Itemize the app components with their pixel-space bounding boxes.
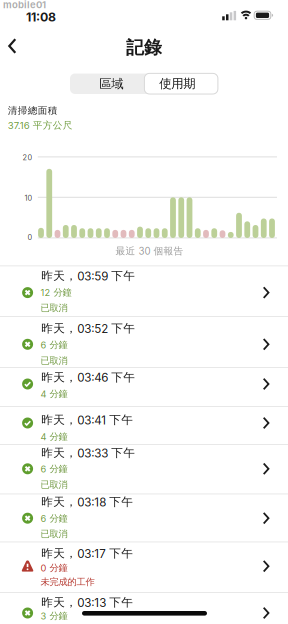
staticText: 12 分鐘 [40,286,71,298]
button[interactable]: 昨天，03:18 下午 [0,493,288,541]
staticText: 昨天，03:13 下午 [41,595,133,610]
staticText: 已取消 [40,302,67,314]
staticText: 已取消 [40,355,67,366]
button[interactable]: 昨天，03:17 下午 [0,541,288,592]
staticText: 昨天，03:59 下午 [41,269,135,283]
staticText: 區域 [99,76,123,91]
staticText: 3 分鐘 [40,610,67,622]
staticText: 0 [27,233,32,242]
staticText: 已取消 [40,528,67,540]
staticText: 4 分鐘 [40,431,67,442]
button[interactable]: 昨天，03:33 下午 [0,444,288,493]
staticText: 10 [24,194,32,203]
staticText: 昨天，03:52 下午 [41,321,135,336]
button[interactable]: 區域 [70,73,144,94]
staticText: 6 分鐘 [40,512,67,524]
button[interactable]: Back [0,26,29,66]
staticText: 清掃總面積 [8,105,58,117]
button[interactable]: 昨天，03:59 下午 [0,265,288,316]
staticText: 37.16 平方公尺 [8,119,73,131]
staticText: 使用期 [159,76,195,91]
staticText: 已取消 [40,479,67,490]
button[interactable]: 昨天，03:46 下午 [0,367,288,406]
staticText: 昨天，03:17 下午 [41,546,133,561]
staticText: 11:08 [26,10,56,24]
button[interactable]: 使用期 [144,73,218,94]
staticText: 昨天，03:46 下午 [41,370,135,385]
staticText: 昨天，03:41 下午 [41,413,133,427]
staticText: 記錄 [126,36,162,59]
button[interactable]: 昨天，03:52 下午 [0,316,288,367]
staticText: 昨天，03:18 下午 [41,495,133,509]
staticText: 最近 30 個報告 [115,245,183,257]
button[interactable]: 昨天，03:13 下午 [0,592,288,624]
staticText: 6 分鐘 [40,463,67,475]
staticText: 4 分鐘 [40,388,67,400]
staticText: 6 分鐘 [40,339,67,351]
staticText: mobile01 [3,0,46,10]
button[interactable]: 昨天，03:41 下午 [0,406,288,444]
staticText: 20 [22,153,32,162]
staticText: 昨天，03:33 下午 [41,446,135,460]
staticText: 0 分鐘 [40,562,67,574]
staticText: 未完成的工作 [40,576,94,588]
